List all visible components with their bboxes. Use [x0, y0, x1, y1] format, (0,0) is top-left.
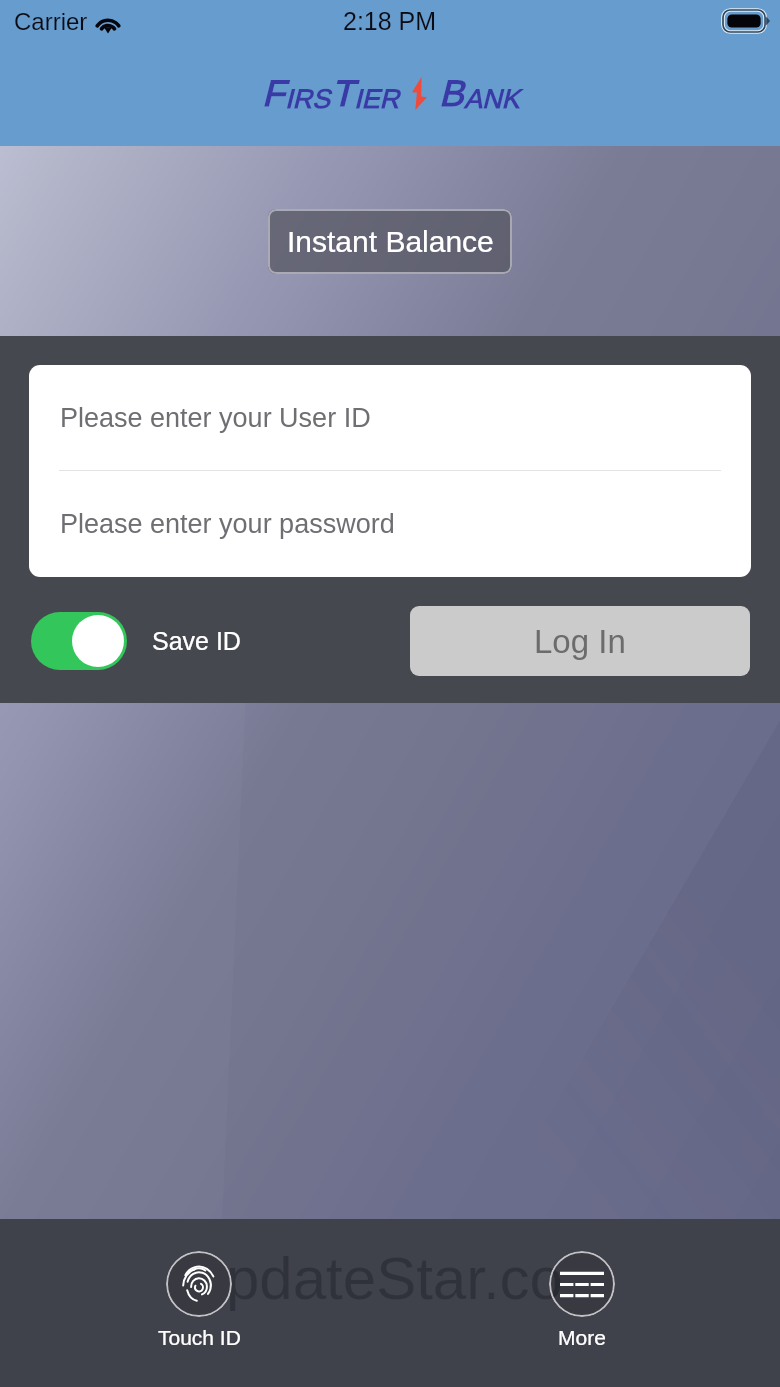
button[interactable]: Save ID: [31, 612, 241, 670]
staticText: IER: [354, 84, 400, 114]
staticText: pdateStar.co: [226, 1245, 563, 1312]
staticText: IRS: [285, 84, 331, 114]
button[interactable]: Please enter your User ID: [29, 365, 751, 470]
staticText: Please enter your password: [60, 509, 395, 539]
staticText: 2:18 PM: [343, 7, 437, 35]
staticText: Please enter your User ID: [60, 403, 371, 433]
staticText: Touch ID: [158, 1326, 241, 1349]
staticText: Save ID: [152, 627, 241, 655]
button[interactable]: Instant Balance: [268, 209, 512, 274]
staticText: Carrier: [14, 8, 88, 35]
staticText: B: [439, 73, 464, 114]
button[interactable]: Please enter your password: [29, 471, 751, 577]
button[interactable]: More: [504, 1251, 660, 1349]
staticText: More: [558, 1326, 606, 1349]
staticText: T: [331, 73, 354, 114]
staticText: Instant Balance: [287, 225, 494, 259]
staticText: Log In: [534, 623, 626, 660]
staticText: F: [262, 73, 285, 114]
button[interactable]: Log In: [410, 606, 750, 676]
staticText: ANK: [464, 84, 520, 114]
button[interactable]: Touch ID: [121, 1251, 277, 1349]
